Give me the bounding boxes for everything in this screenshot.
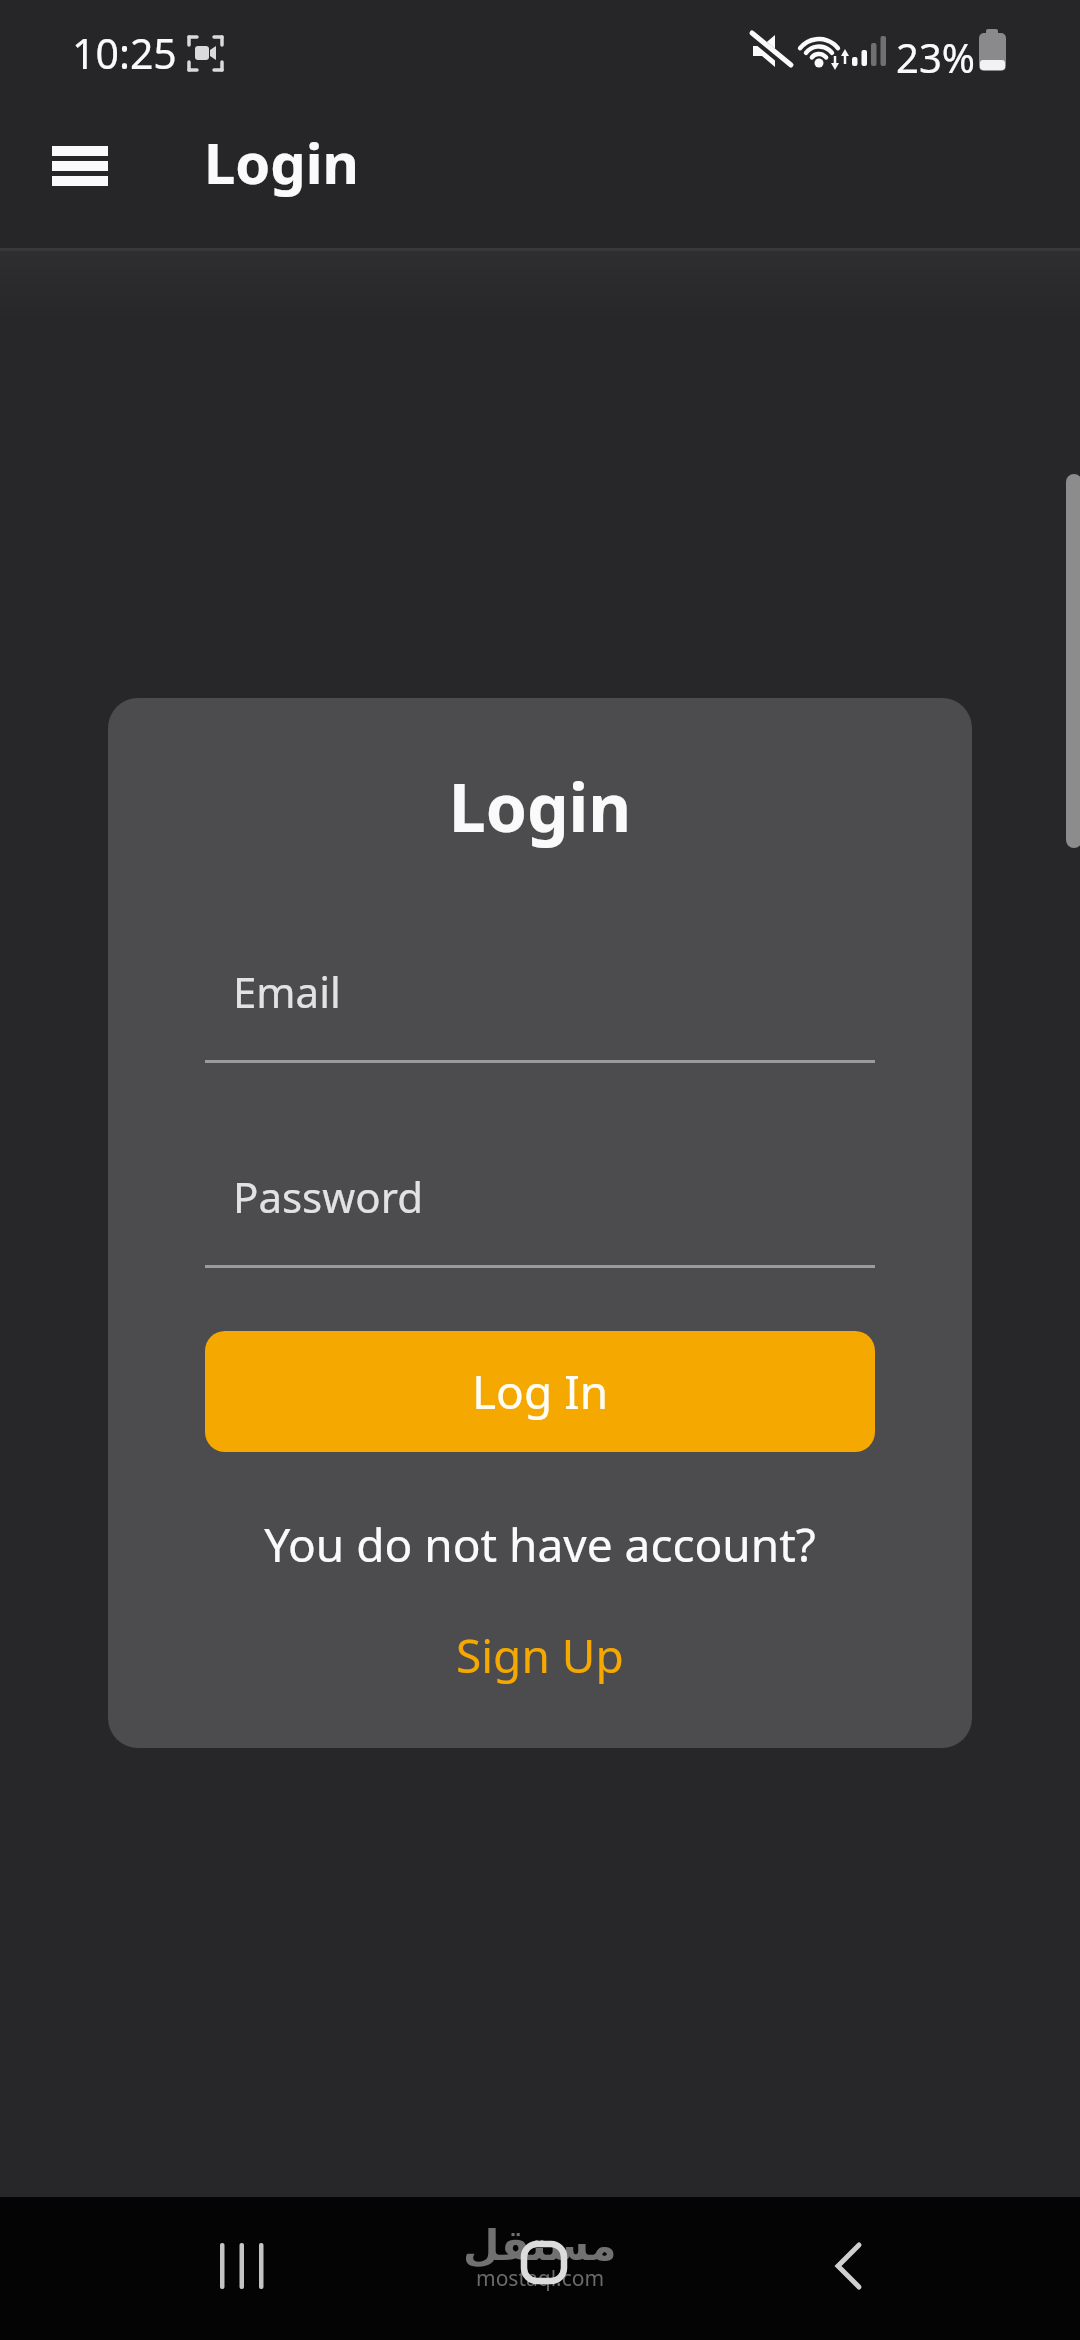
staticText: Log In (472, 1360, 609, 1423)
staticText: Login (204, 124, 359, 200)
button[interactable] (801, 2221, 895, 2311)
staticText: Password (233, 1168, 423, 1225)
staticText: 10:25 (72, 25, 177, 81)
staticText: Sign Up (456, 1624, 624, 1687)
staticText: Login (205, 761, 875, 851)
staticText: mostaql.com (476, 2264, 605, 2293)
button[interactable] (196, 2221, 286, 2311)
staticText: مستقل (463, 2221, 617, 2270)
staticText: Email (233, 963, 341, 1020)
button[interactable]: Log In (205, 1331, 875, 1452)
staticText: You do not have account? (205, 1513, 875, 1576)
button[interactable]: Sign Up (456, 1624, 624, 1687)
button[interactable] (36, 130, 124, 202)
staticText: 23% (896, 30, 975, 84)
button[interactable] (495, 2199, 593, 2325)
